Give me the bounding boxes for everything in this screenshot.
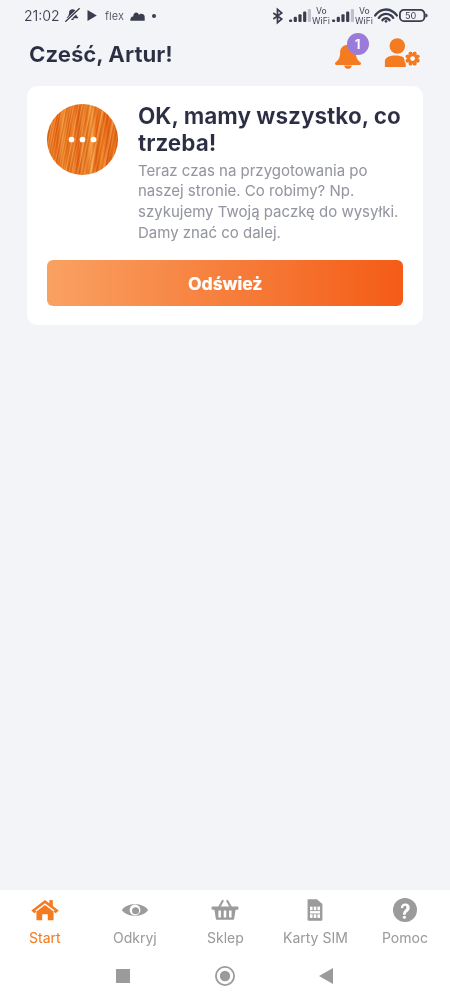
staticText: 1 (355, 36, 361, 52)
staticText: WiFi (312, 16, 330, 26)
staticText: WiFi (355, 16, 373, 26)
button[interactable]: Home (202, 953, 248, 999)
staticText: Vo (316, 6, 327, 16)
staticText: Karty SIM (283, 929, 348, 946)
staticText: Odśwież (188, 273, 263, 294)
staticText: Cześć, Artur! (29, 40, 173, 67)
button[interactable]: Sklep (180, 890, 270, 953)
staticText: flex (105, 9, 124, 22)
button[interactable]: Notifications (327, 33, 369, 75)
staticText: Pomoc (382, 929, 428, 946)
button[interactable]: Odśwież (47, 260, 403, 306)
button[interactable]: Odkryj (90, 890, 180, 953)
staticText: Odkryj (113, 929, 157, 946)
staticText: OK, mamy wszystko, co trzeba! (138, 102, 403, 157)
staticText: 21:02 (24, 7, 60, 24)
staticText: Teraz czas na przygotowania po naszej st… (138, 161, 403, 242)
button[interactable]: Back (303, 953, 349, 999)
staticText: 50 (405, 10, 417, 21)
staticText: Start (29, 929, 61, 946)
staticText: Vo (359, 6, 370, 16)
button[interactable]: Karty SIM (270, 890, 360, 953)
button[interactable]: Account settings (380, 34, 428, 82)
staticText: Sklep (207, 929, 244, 946)
button[interactable]: Pomoc (360, 890, 450, 953)
button[interactable]: Start (0, 890, 90, 953)
button[interactable]: Recents (100, 953, 146, 999)
